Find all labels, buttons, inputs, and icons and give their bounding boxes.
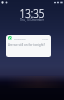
- staticText: 13:34: [42, 37, 49, 40]
- staticText: Thu, 10 December: [0, 18, 64, 22]
- staticText: WhatsApp: [14, 37, 26, 40]
- staticText: Are we still on for tonight?: [8, 43, 45, 47]
- staticText: 13:35: [8, 4, 56, 22]
- button[interactable]: WhatsApp: [6, 35, 51, 57]
